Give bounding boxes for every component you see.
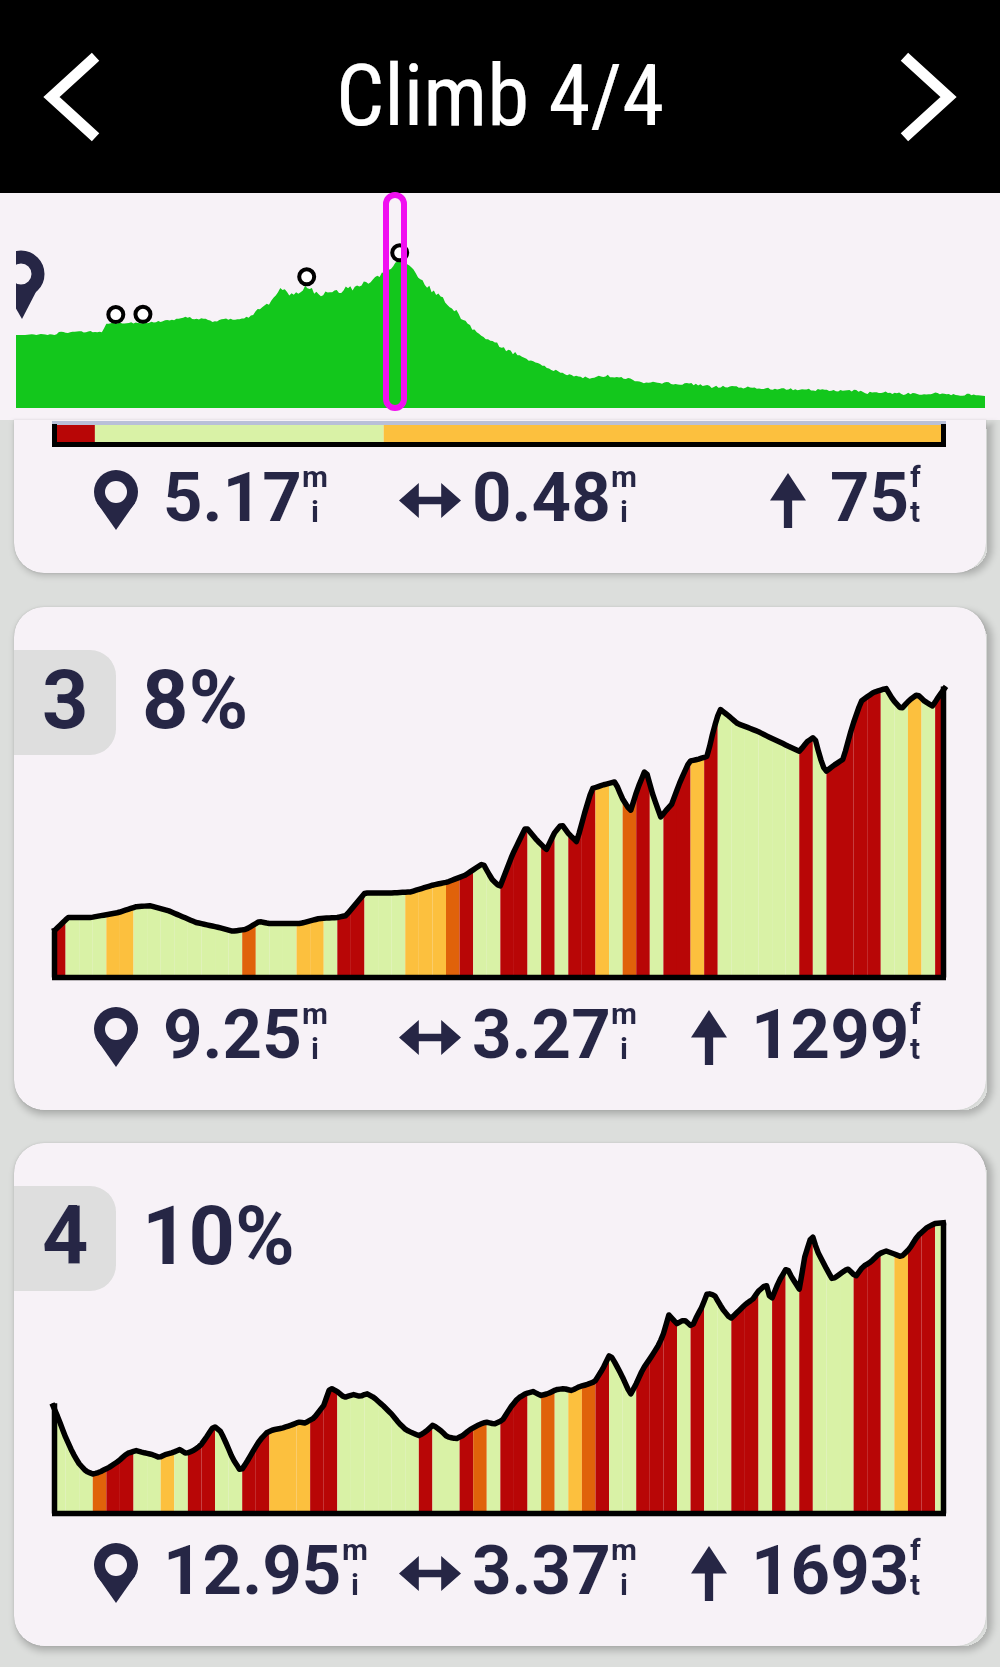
button[interactable]: 4 [14,1143,986,1646]
staticText: f [910,1532,921,1567]
staticText: 3.27 [472,994,611,1068]
staticText: m [611,996,637,1031]
staticText: 12.95 [163,1530,342,1604]
button[interactable]: 3 [14,607,986,1110]
staticText: i [311,1031,319,1066]
staticText: m [342,1532,368,1567]
staticText: f [910,996,921,1031]
staticText: 1693 [751,1530,910,1604]
staticText: 0.48 [472,457,611,531]
staticText: i [311,494,319,529]
staticText: 1299 [751,994,910,1068]
button[interactable]: Next climb [868,37,988,157]
button[interactable]: 5.17 [14,420,986,573]
staticText: t [910,1031,921,1066]
staticText: i [620,494,628,529]
staticText: 9.25 [163,994,302,1068]
staticText: 3.37 [472,1530,611,1604]
staticText: 3 [42,653,89,748]
staticText: f [910,459,921,494]
staticText: 5.17 [163,457,302,531]
staticText: Climb 4/4 [336,46,665,146]
staticText: t [910,494,921,529]
staticText: 4 [42,1189,89,1284]
staticText: m [302,459,328,494]
staticText: m [611,459,637,494]
staticText: i [351,1567,359,1602]
staticText: 75 [830,457,910,531]
staticText: i [620,1031,628,1066]
button[interactable]: Previous climb [11,37,131,157]
staticText: 8% [142,653,249,748]
staticText: 10% [142,1189,295,1284]
staticText: m [302,996,328,1031]
staticText: i [620,1567,628,1602]
staticText: t [910,1567,921,1602]
staticText: m [611,1532,637,1567]
